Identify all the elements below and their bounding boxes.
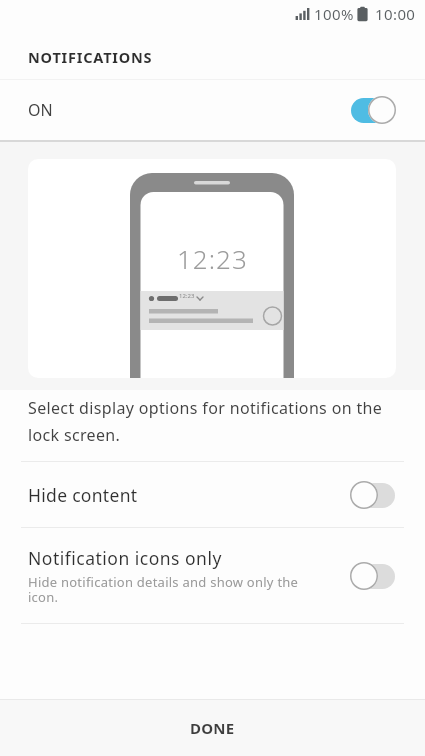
button[interactable]: Notification icons only [0,528,425,623]
button[interactable]: ON [0,80,425,140]
staticText: 12:23 [177,241,248,276]
staticText: 10:00 [375,4,416,24]
staticText: DONE [190,718,235,738]
staticText: NOTIFICATIONS [28,47,153,67]
staticText: 12:23 [179,292,195,300]
button[interactable]: Hide content [0,462,425,527]
staticText: Notification icons only [28,546,222,570]
staticText: 100% [314,4,354,24]
button[interactable] [350,481,396,509]
button[interactable] [350,96,396,124]
button[interactable]: DONE [166,706,259,750]
staticText: Select display options for notifications… [28,397,383,446]
staticText: Hide content [28,483,138,507]
button[interactable] [350,562,396,590]
staticText: ON [28,99,53,121]
staticText: Hide notification details and show only … [28,573,299,606]
